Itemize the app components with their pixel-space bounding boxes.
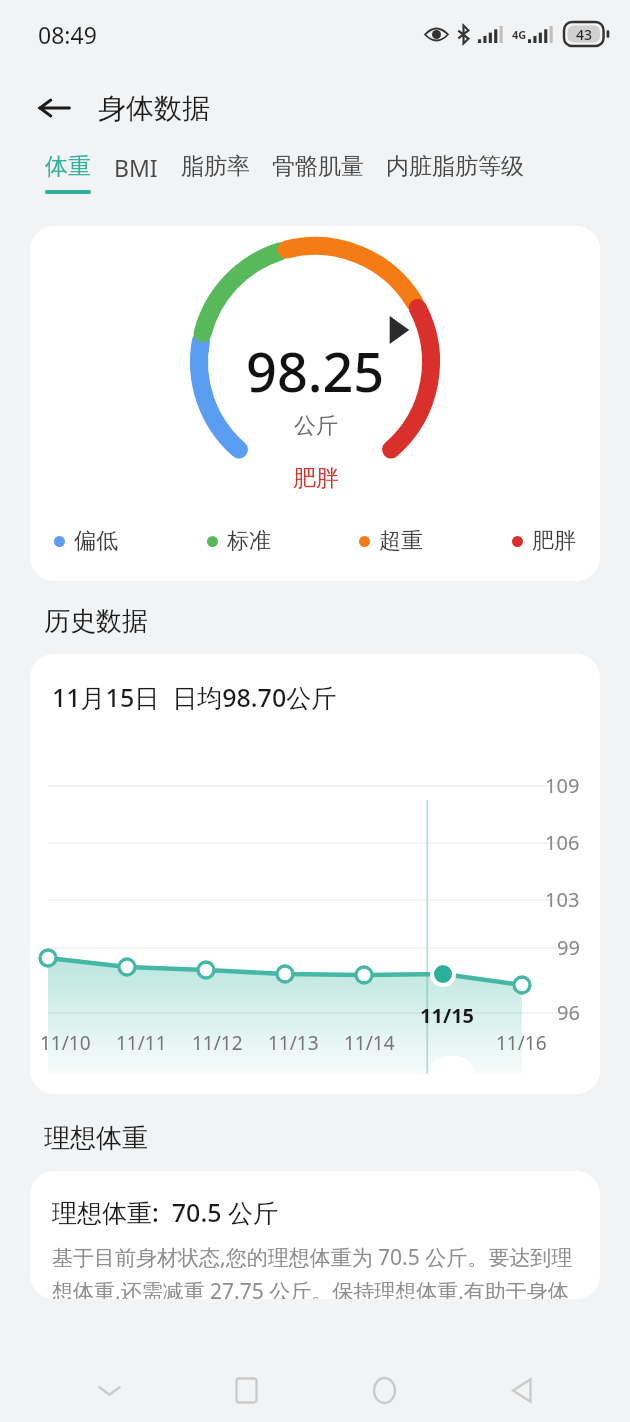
staticText: 99 xyxy=(557,934,580,961)
button[interactable]: Chart scrubber xyxy=(428,1056,474,1094)
button[interactable]: 骨骼肌量 xyxy=(261,148,375,198)
staticText: 43 xyxy=(576,25,593,44)
staticText: 08:49 xyxy=(38,19,97,50)
button[interactable]: 脂肪率 xyxy=(170,148,261,198)
staticText: 11/11 xyxy=(116,1030,167,1056)
staticText: 肥胖 xyxy=(293,464,339,493)
staticText: 骨骼肌量 xyxy=(272,152,364,181)
button[interactable]: Recents xyxy=(218,1362,274,1418)
staticText: 11月15日 日均98.70公斤 xyxy=(52,680,337,714)
staticText: 11/15 xyxy=(420,1002,475,1029)
staticText: 4G xyxy=(512,27,527,42)
staticText: 理想体重 xyxy=(44,1122,148,1155)
staticText: 偏低 xyxy=(74,527,118,555)
button[interactable]: 内脏脂肪等级 xyxy=(375,148,535,198)
staticText: 理想体重: 70.5 公斤 xyxy=(52,1195,279,1229)
staticText: 106 xyxy=(545,829,580,856)
staticText: 基于目前身材状态,您的理想体重为 70.5 公斤。要达到理想体重,还需减重 27… xyxy=(52,1243,582,1299)
staticText: 肥胖 xyxy=(532,527,576,555)
staticText: 103 xyxy=(545,886,580,913)
button[interactable]: Hide keyboard xyxy=(81,1362,137,1418)
staticText: BMI xyxy=(114,152,158,183)
staticText: 超重 xyxy=(379,527,423,555)
staticText: 历史数据 xyxy=(44,605,148,638)
staticText: 11/14 xyxy=(344,1030,395,1056)
button[interactable]: 理想体重: 70.5 公斤 xyxy=(30,1171,600,1299)
staticText: 脂肪率 xyxy=(181,152,250,181)
staticText: 11/16 xyxy=(496,1030,547,1056)
staticText: 96 xyxy=(557,999,580,1026)
button[interactable]: 体重 xyxy=(34,148,102,198)
staticText: 内脏脂肪等级 xyxy=(386,152,524,181)
staticText: 109 xyxy=(545,772,580,799)
button[interactable]: Back xyxy=(493,1362,549,1418)
staticText: 11/13 xyxy=(268,1030,319,1056)
staticText: 98.25 xyxy=(246,334,385,408)
staticText: 公斤 xyxy=(294,412,338,440)
staticText: 体重 xyxy=(45,152,91,181)
button[interactable]: Back xyxy=(28,82,80,134)
staticText: 身体数据 xyxy=(98,91,210,126)
staticText: 11/10 xyxy=(40,1030,91,1056)
button[interactable]: Home xyxy=(356,1362,412,1418)
staticText: 11/12 xyxy=(192,1030,243,1056)
button[interactable]: BMI xyxy=(102,148,170,200)
staticText: 标准 xyxy=(227,527,271,555)
